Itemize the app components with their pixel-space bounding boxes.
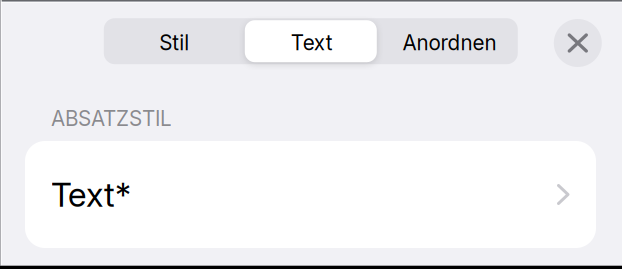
- staticText: Text*: [51, 174, 131, 215]
- staticText: Text: [291, 30, 333, 55]
- button[interactable]: Anordnen: [381, 20, 518, 66]
- staticText: Stil: [159, 30, 189, 55]
- button[interactable]: Stil: [105, 20, 243, 66]
- button[interactable]: Text*: [25, 141, 596, 248]
- button[interactable]: Text: [243, 20, 381, 66]
- button[interactable]: Schließen: [553, 19, 602, 67]
- staticText: Anordnen: [402, 30, 496, 55]
- staticText: ABSATZSTIL: [51, 106, 172, 131]
